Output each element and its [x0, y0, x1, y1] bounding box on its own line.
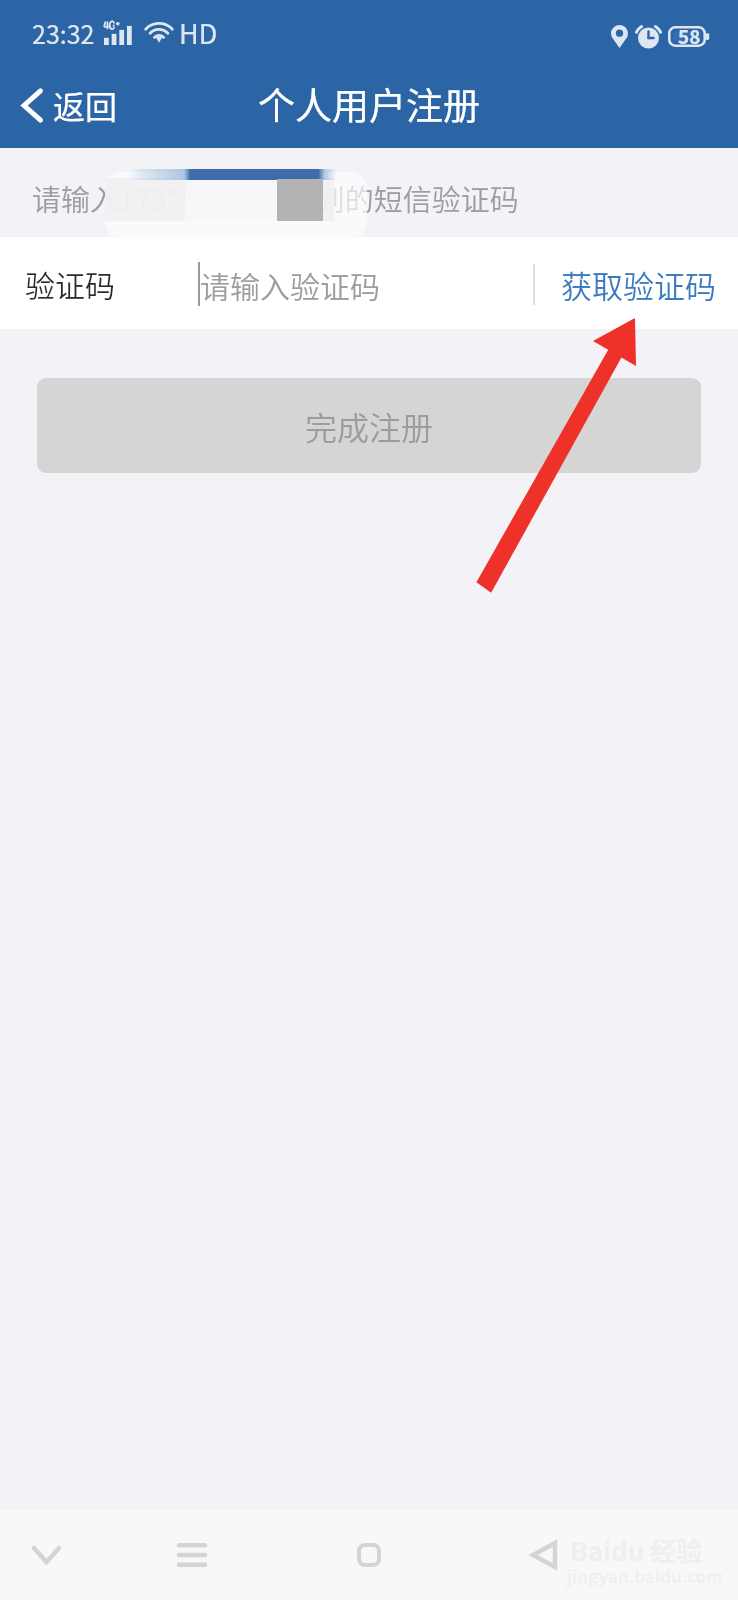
button[interactable]: Home: [339, 1525, 399, 1585]
staticText: 58: [678, 22, 701, 50]
button[interactable]: 返回: [0, 68, 136, 142]
staticText: 个人用户注册: [258, 77, 480, 131]
button[interactable]: 获取验证码: [534, 237, 738, 329]
staticText: HD: [179, 13, 218, 52]
staticText: 完成注册: [305, 403, 434, 449]
staticText: 验证码: [25, 262, 115, 305]
button[interactable]: Menu: [162, 1525, 222, 1585]
button[interactable]: Back: [514, 1525, 574, 1585]
staticText: Baidu 经验: [570, 1531, 703, 1569]
staticText: 返回: [53, 82, 118, 128]
button[interactable]: Hide keyboard: [16, 1525, 76, 1585]
staticText: 请输入验证码: [200, 263, 380, 306]
staticText: 获取验证码: [561, 262, 716, 307]
button[interactable]: 完成注册: [37, 378, 701, 473]
staticText: 请输入173*********收到的短信验证码: [32, 177, 519, 219]
staticText: 23:32: [32, 15, 95, 51]
staticText: jingyan.baidu.com: [567, 1563, 723, 1588]
